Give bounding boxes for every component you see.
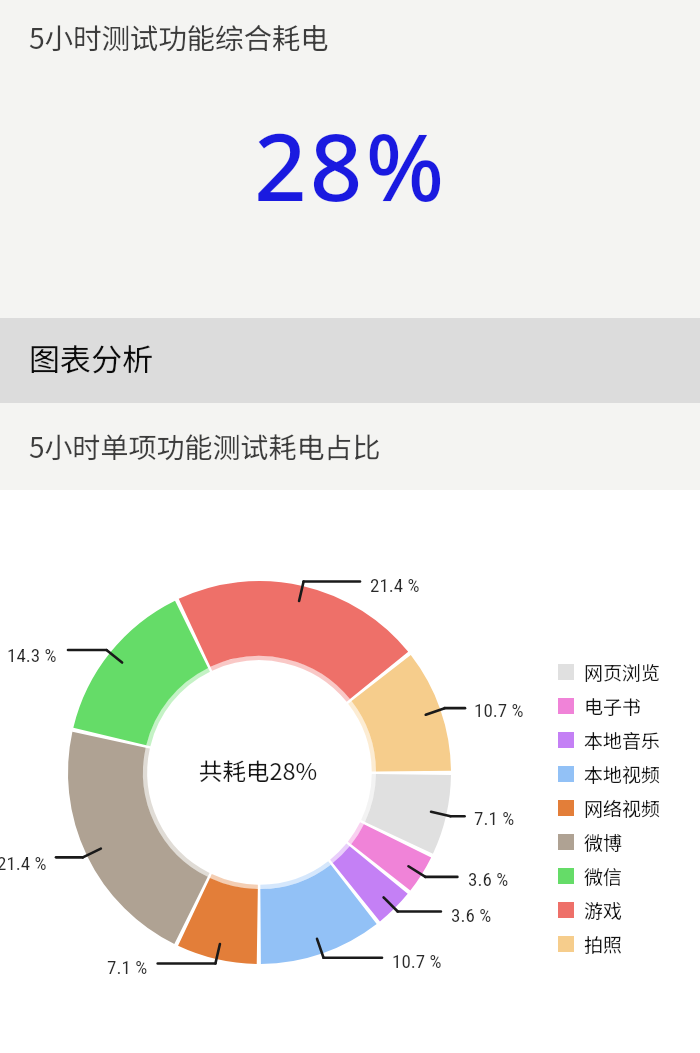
button[interactable]: Power usage donut chart — [40, 553, 480, 993]
staticText: 微博 — [584, 828, 623, 856]
button[interactable]: 本地音乐 — [558, 724, 684, 756]
staticText: 10.7 % — [474, 699, 524, 721]
button[interactable]: 网络视频 — [558, 792, 684, 824]
button[interactable]: 游戏 — [558, 894, 684, 926]
staticText: 5小时测试功能综合耗电 — [29, 16, 329, 57]
staticText: 14.3 % — [7, 644, 57, 666]
staticText: 21.4 % — [370, 574, 420, 596]
staticText: 微信 — [584, 862, 623, 890]
staticText: 游戏 — [584, 896, 623, 924]
staticText: 3.6 % — [451, 904, 492, 926]
staticText: 3.6 % — [468, 868, 509, 890]
staticText: 28% — [254, 103, 448, 228]
button[interactable]: 5小时测试功能综合耗电 — [0, 0, 700, 318]
staticText: 10.7 % — [392, 950, 442, 972]
button[interactable]: 微信 — [558, 860, 684, 892]
staticText: 电子书 — [584, 692, 642, 720]
staticText: 5小时单项功能测试耗电占比 — [29, 426, 381, 467]
staticText: 7.1 % — [107, 956, 148, 978]
staticText: 7.1 % — [474, 807, 515, 829]
button[interactable]: 图表分析 — [0, 318, 700, 403]
button[interactable]: 5小时单项功能测试耗电占比 — [0, 403, 700, 490]
staticText: 图表分析 — [29, 335, 153, 380]
staticText: 网页浏览 — [584, 658, 661, 686]
staticText: 本地视频 — [584, 760, 661, 788]
staticText: 本地音乐 — [584, 726, 661, 754]
button[interactable]: 微博 — [558, 826, 684, 858]
button[interactable]: 电子书 — [558, 690, 684, 722]
staticText: 网络视频 — [584, 794, 661, 822]
button[interactable]: 本地视频 — [558, 758, 684, 790]
button[interactable]: 拍照 — [558, 928, 684, 960]
button[interactable]: 网页浏览 — [558, 656, 684, 688]
staticText: 21.4 % — [0, 852, 47, 874]
staticText: 共耗电28% — [199, 753, 318, 787]
staticText: 拍照 — [584, 930, 623, 958]
